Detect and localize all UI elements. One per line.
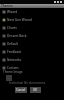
staticText: Theme Image xyxy=(3,70,23,74)
button[interactable]: Dessert Back xyxy=(0,32,64,40)
staticText: Dessert Back xyxy=(7,34,27,38)
button[interactable]: Cancel xyxy=(15,87,27,93)
button[interactable]: Custom xyxy=(0,64,64,72)
staticText: Individual file dimensions xyxy=(9,81,46,85)
button[interactable]: Feedback xyxy=(0,48,64,56)
button[interactable]: OK xyxy=(30,87,41,93)
button[interactable]: Default xyxy=(0,40,64,48)
staticText: Networks xyxy=(7,58,22,62)
button[interactable]: Charts xyxy=(0,24,64,32)
staticText: Feedback xyxy=(7,50,22,54)
staticText: Wizard xyxy=(7,10,18,14)
staticText: Charts xyxy=(7,26,17,30)
button[interactable]: Wizard xyxy=(0,8,64,16)
staticText: Themes xyxy=(1,4,13,8)
staticText: Cancel xyxy=(16,88,26,92)
staticText: Next Gen Wizard xyxy=(7,18,33,22)
button[interactable]: Networks xyxy=(0,56,64,64)
staticText: Default xyxy=(7,42,18,46)
staticText: Custom xyxy=(7,66,19,70)
button[interactable]: Next Gen Wizard xyxy=(0,16,64,24)
staticText: OK xyxy=(33,88,38,92)
